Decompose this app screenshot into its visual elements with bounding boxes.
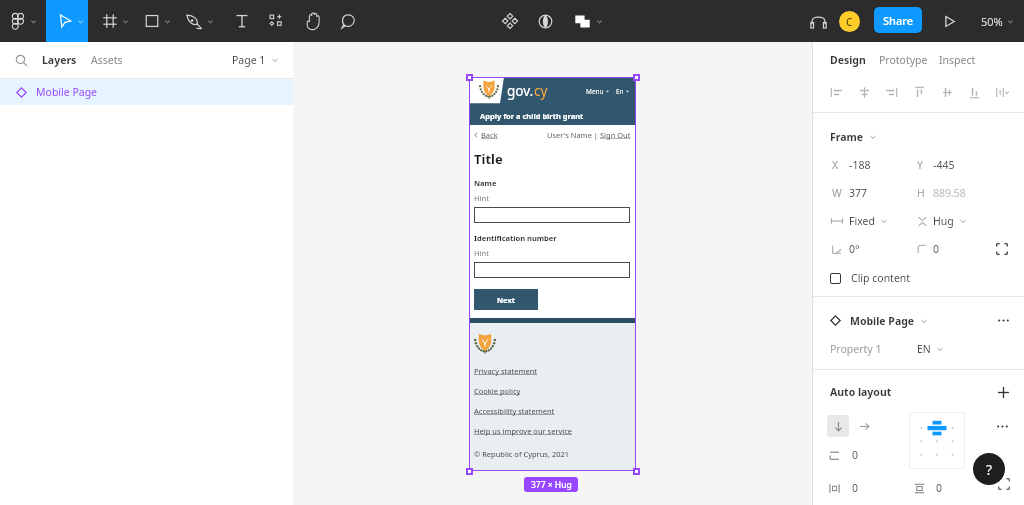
button[interactable]: Move xyxy=(57,0,84,42)
staticText: 0 xyxy=(852,481,859,495)
staticText: Prototype xyxy=(879,53,928,67)
button[interactable]: Layers xyxy=(42,53,77,67)
staticText: En xyxy=(616,87,624,96)
staticText: Next xyxy=(497,295,516,305)
button[interactable]: Help us improve our service xyxy=(474,426,573,436)
button[interactable]: Account xyxy=(839,11,860,32)
staticText: 377 xyxy=(849,186,868,200)
staticText: X xyxy=(832,158,839,172)
staticText: Assets xyxy=(91,53,123,67)
button[interactable]: Plugins xyxy=(502,0,518,42)
staticText: Sign Out xyxy=(600,130,631,140)
staticText: gov. xyxy=(507,82,534,100)
button[interactable]: Align 4 xyxy=(938,83,957,102)
staticText: Back xyxy=(481,130,498,140)
staticText: Page 1 xyxy=(232,53,266,67)
staticText: 0 xyxy=(936,481,943,495)
button[interactable]: Hug xyxy=(933,214,967,228)
button[interactable]: Inspect xyxy=(939,53,976,67)
staticText: Name xyxy=(474,178,497,188)
button[interactable]: Vertical layout xyxy=(827,415,849,437)
button[interactable]: Independent corners xyxy=(994,242,1010,256)
staticText: Help us improve our service xyxy=(474,426,573,436)
staticText: Identification number xyxy=(474,233,557,243)
staticText: Layers xyxy=(42,53,77,67)
button[interactable]: Horizontal layout xyxy=(853,415,875,437)
button[interactable]: Align 3 xyxy=(910,83,929,102)
button[interactable]: Help xyxy=(973,453,1005,485)
button[interactable]: Comment xyxy=(332,0,364,42)
staticText: Hint xyxy=(474,248,489,258)
staticText: Cookie policy xyxy=(474,386,521,396)
button[interactable]: Frame xyxy=(830,130,877,144)
button[interactable]: Align 1 xyxy=(855,83,874,102)
button[interactable]: Align 5 xyxy=(965,83,984,102)
button[interactable]: EN xyxy=(917,341,944,356)
button[interactable]: Share xyxy=(874,7,922,33)
button[interactable]: Add xyxy=(995,384,1011,400)
button[interactable]: Clip content xyxy=(830,271,911,285)
staticText: Frame xyxy=(830,130,864,144)
staticText: W xyxy=(832,186,842,200)
button[interactable]: Alignment grid xyxy=(909,412,965,469)
button[interactable]: Components xyxy=(260,0,292,42)
button[interactable]: Text xyxy=(226,0,258,42)
button[interactable]: Main menu xyxy=(10,0,37,42)
button[interactable]: Fixed xyxy=(849,214,888,228)
staticText: 0 xyxy=(852,448,859,462)
button[interactable]: Sign Out xyxy=(600,130,631,140)
button[interactable]: Align 2 xyxy=(882,83,901,102)
staticText: Title xyxy=(474,150,503,168)
button[interactable]: Mobile Page xyxy=(16,79,293,105)
staticText: 889.58 xyxy=(933,186,966,200)
button[interactable]: Design xyxy=(830,53,866,67)
staticText: 377 × Hug xyxy=(531,479,572,491)
button[interactable]: Shape xyxy=(144,0,171,42)
button[interactable]: Menu xyxy=(586,87,609,96)
staticText: Fixed xyxy=(849,214,875,228)
staticText: Mobile Page xyxy=(36,85,98,99)
staticText: Menu xyxy=(586,87,604,96)
staticText: Mobile Page xyxy=(850,314,915,328)
staticText: Property 1 xyxy=(830,342,882,356)
button[interactable]: Align 6 xyxy=(993,83,1012,102)
button[interactable]: Pen xyxy=(186,0,214,42)
button[interactable]: Prototype xyxy=(879,53,928,67)
staticText: C xyxy=(846,15,853,29)
button[interactable]: More xyxy=(995,313,1011,328)
staticText: Inspect xyxy=(939,53,976,67)
staticText: 0 xyxy=(933,242,940,256)
button[interactable]: Contrast xyxy=(538,0,553,42)
button[interactable]: Audio xyxy=(809,0,827,42)
staticText: Share xyxy=(883,13,913,28)
button[interactable]: Align 0 xyxy=(827,83,846,102)
button[interactable]: Assets xyxy=(91,53,123,67)
button[interactable]: Present xyxy=(942,0,956,42)
button[interactable]: More options xyxy=(994,418,1010,434)
button[interactable]: Move tool xyxy=(46,0,88,42)
button[interactable]: Page 1 xyxy=(232,53,279,67)
staticText: ? xyxy=(986,460,993,479)
button[interactable]: Cookie policy xyxy=(474,386,521,396)
staticText: cy xyxy=(534,82,548,100)
staticText: Auto layout xyxy=(830,385,892,399)
staticText: © Republic of Cyprus, 2021 xyxy=(474,449,570,459)
staticText: Hint xyxy=(474,193,489,203)
button[interactable]: Next xyxy=(474,289,538,310)
staticText: H xyxy=(917,186,925,200)
staticText: Clip content xyxy=(851,271,911,285)
staticText: -188 xyxy=(849,158,871,172)
staticText: Hug xyxy=(933,214,954,228)
button[interactable]: Back xyxy=(473,130,498,140)
button[interactable]: Accessibility statement xyxy=(474,406,555,416)
button[interactable]: En xyxy=(616,87,629,96)
staticText: Y xyxy=(917,158,923,172)
button[interactable]: 50% xyxy=(981,0,1014,42)
button[interactable]: Hand xyxy=(296,0,330,42)
button[interactable]: Privacy statement xyxy=(474,366,537,376)
staticText: Accessibility statement xyxy=(474,406,555,416)
staticText: Design xyxy=(830,53,866,67)
button[interactable]: Boolean groups xyxy=(575,0,603,42)
staticText: Privacy statement xyxy=(474,366,537,376)
button[interactable]: Frame xyxy=(102,0,129,42)
